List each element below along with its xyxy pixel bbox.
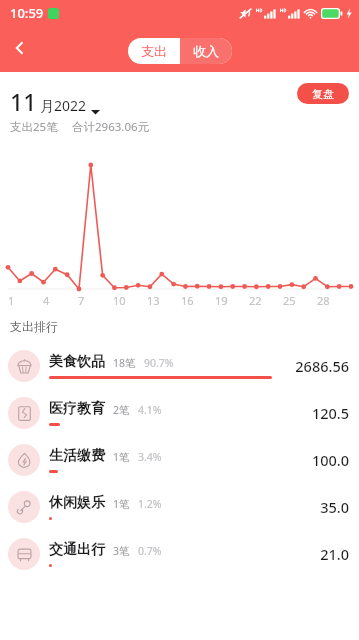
staticText: 4 xyxy=(43,293,50,308)
staticText: 合计2963.06元 xyxy=(72,119,150,135)
button[interactable]: 医疗教育 xyxy=(0,389,359,436)
staticText: 10:59 xyxy=(10,4,44,22)
staticText: 4.1% xyxy=(138,403,162,417)
staticText: 0.7% xyxy=(138,544,162,558)
button[interactable]: 美食饮品 xyxy=(0,342,359,389)
button[interactable]: 收入 xyxy=(180,38,232,64)
staticText: 25 xyxy=(283,293,296,308)
staticText: 休闲娱乐 xyxy=(49,494,105,512)
staticText: 医疗教育 xyxy=(49,400,105,418)
staticText: 2686.56 xyxy=(295,356,349,376)
staticText: 90.7% xyxy=(144,356,174,370)
staticText: 1笔 xyxy=(113,497,130,511)
staticText: 交通出行 xyxy=(49,541,105,559)
staticText: 28 xyxy=(317,293,330,308)
staticText: 1 xyxy=(8,293,15,308)
staticText: 120.5 xyxy=(311,403,349,423)
staticText: 10 xyxy=(113,293,126,308)
staticText: 7 xyxy=(78,293,85,308)
staticText: 100.0 xyxy=(311,450,349,470)
button[interactable]: Back xyxy=(2,30,38,66)
button[interactable]: 交通出行 xyxy=(0,530,359,577)
staticText: 美食饮品 xyxy=(49,353,105,371)
staticText: 支出 xyxy=(141,43,167,59)
staticText: 35.0 xyxy=(320,497,349,517)
staticText: 2笔 xyxy=(113,403,130,417)
staticText: 支出25笔 xyxy=(10,119,58,135)
staticText: 1笔 xyxy=(113,450,130,464)
staticText: 生活缴费 xyxy=(49,447,105,465)
button[interactable]: 休闲娱乐 xyxy=(0,483,359,530)
staticText: 月2022 xyxy=(40,96,87,115)
staticText: 13 xyxy=(147,293,160,308)
button[interactable]: 生活缴费 xyxy=(0,436,359,483)
staticText: 复盘 xyxy=(312,87,334,101)
staticText: 3.4% xyxy=(138,450,162,464)
button[interactable]: 11 xyxy=(10,86,100,117)
staticText: 收入 xyxy=(193,43,219,59)
staticText: 18笔 xyxy=(113,356,136,370)
staticText: 19 xyxy=(215,293,228,308)
staticText: 22 xyxy=(249,293,262,308)
button[interactable]: 支出 xyxy=(128,38,180,64)
staticText: 3笔 xyxy=(113,544,130,558)
staticText: 11 xyxy=(10,86,37,117)
staticText: 21.0 xyxy=(320,544,349,564)
staticText: 16 xyxy=(181,293,194,308)
staticText: 支出排行 xyxy=(10,319,58,334)
button[interactable]: 复盘 xyxy=(297,83,349,104)
staticText: 1.2% xyxy=(138,497,162,511)
